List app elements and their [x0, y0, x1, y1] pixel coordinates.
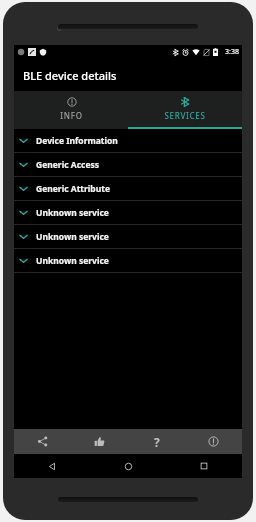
- button[interactable]: SERVICES: [128, 91, 242, 127]
- staticText: Unknown service: [36, 255, 109, 267]
- button[interactable]: About: [185, 429, 242, 454]
- staticText: ?: [154, 434, 160, 450]
- staticText: INFO: [60, 110, 83, 121]
- staticText: Unknown service: [36, 231, 109, 243]
- button[interactable]: Rate: [71, 429, 128, 454]
- button[interactable]: Home: [90, 454, 166, 478]
- button[interactable]: Recents: [166, 454, 242, 478]
- button[interactable]: Device Information: [14, 129, 242, 153]
- button[interactable]: Share: [14, 429, 71, 454]
- button[interactable]: Unknown service: [14, 201, 242, 225]
- staticText: Unknown service: [36, 207, 109, 219]
- staticText: BLE device details: [23, 68, 117, 83]
- button[interactable]: Back: [14, 454, 90, 478]
- button[interactable]: Generic Access: [14, 153, 242, 177]
- button[interactable]: INFO: [14, 91, 128, 127]
- staticText: Device Information: [36, 135, 118, 147]
- button[interactable]: Help: [128, 429, 185, 454]
- staticText: SERVICES: [164, 110, 206, 121]
- staticText: 3:38: [225, 47, 239, 57]
- button[interactable]: Unknown service: [14, 249, 242, 273]
- button[interactable]: Generic Attribute: [14, 177, 242, 201]
- staticText: Generic Attribute: [36, 183, 111, 195]
- button[interactable]: Unknown service: [14, 225, 242, 249]
- staticText: Generic Access: [36, 159, 100, 171]
